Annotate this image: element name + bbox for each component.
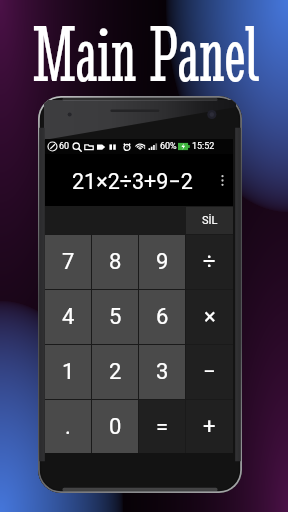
button[interactable]: + (186, 400, 233, 453)
button[interactable]: SİL (186, 207, 233, 234)
staticText: 5 (109, 304, 122, 330)
staticText: − (203, 359, 216, 385)
button[interactable]: 6 (139, 290, 185, 344)
button[interactable]: 1 (45, 345, 91, 399)
staticText: 4 (62, 304, 75, 330)
staticText: SİL (202, 214, 218, 227)
button[interactable]: 0 (92, 400, 138, 453)
staticText: × (204, 304, 216, 330)
button[interactable]: 4 (45, 290, 91, 344)
staticText: 6 (156, 304, 169, 330)
staticText: 9 (156, 249, 169, 275)
button[interactable]: = (139, 400, 185, 453)
staticText: 7 (62, 249, 75, 275)
staticText: = (156, 414, 169, 440)
button[interactable]: ÷ (186, 235, 233, 289)
button[interactable]: 3 (139, 345, 185, 399)
button[interactable]: 7 (45, 235, 91, 289)
button[interactable]: 8 (92, 235, 138, 289)
button[interactable]: − (186, 345, 233, 399)
staticText: 21×2÷3+9−2 (72, 169, 193, 194)
staticText: . (65, 414, 71, 440)
button[interactable]: × (186, 290, 233, 344)
staticText: 60 (59, 141, 70, 152)
staticText: 1 (62, 359, 75, 385)
staticText: 3 (156, 359, 169, 385)
button[interactable]: 2 (92, 345, 138, 399)
staticText: 15:52 (192, 141, 215, 152)
button[interactable]: 9 (139, 235, 185, 289)
staticText: Main Panel (33, 8, 259, 101)
staticText: 60% (160, 141, 177, 152)
button[interactable]: . (45, 400, 91, 453)
button[interactable]: 5 (92, 290, 138, 344)
staticText: ÷ (203, 249, 216, 275)
staticText: 0 (109, 414, 122, 440)
staticText: 8 (109, 249, 122, 275)
button[interactable]: More options (217, 171, 227, 189)
staticText: + (203, 414, 216, 440)
staticText: 2 (109, 359, 122, 385)
